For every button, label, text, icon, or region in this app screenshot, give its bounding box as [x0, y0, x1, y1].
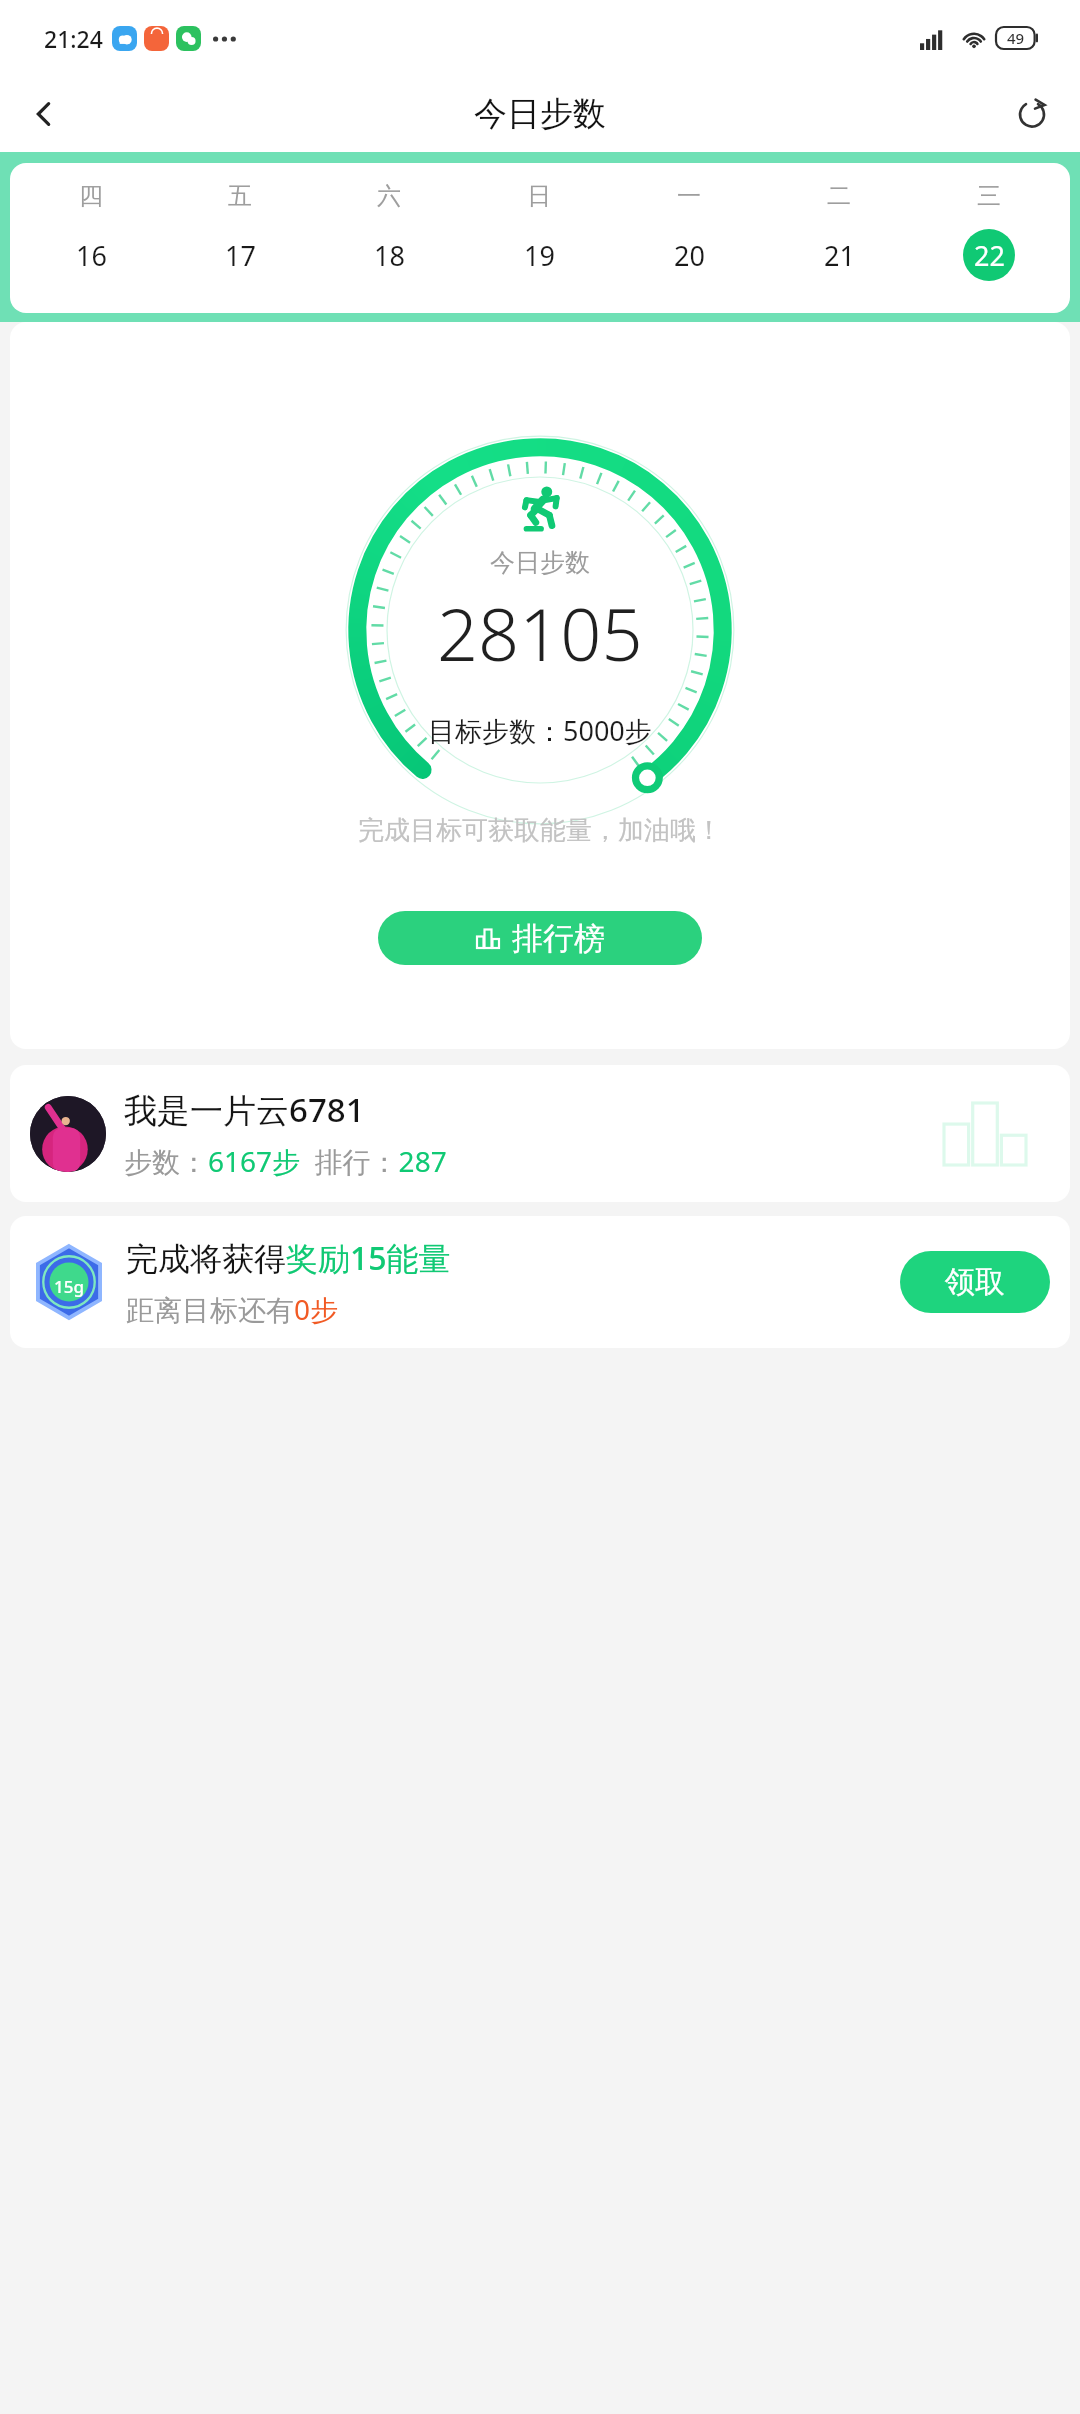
staticText: 五 — [228, 181, 252, 211]
staticText: 19 — [524, 237, 555, 274]
button[interactable]: Back — [16, 86, 72, 142]
staticText: 49 — [1007, 28, 1025, 48]
staticText: 16 — [76, 237, 107, 274]
staticText: 17 — [225, 237, 256, 274]
staticText: 22 — [974, 237, 1005, 274]
button[interactable]: 17 — [214, 229, 266, 281]
staticText: 今日步数 — [474, 93, 606, 135]
button[interactable]: Refresh — [1004, 86, 1060, 142]
staticText: 六 — [377, 181, 401, 211]
staticText: 领取 — [945, 1263, 1005, 1301]
staticText: 15g — [54, 1275, 84, 1298]
staticText: 21 — [824, 237, 855, 274]
staticText: 排行榜 — [512, 919, 605, 958]
staticText: 目标步数：5000步 — [428, 712, 652, 749]
button[interactable]: 16 — [65, 229, 117, 281]
staticText: 完成目标可获取能量，加油哦！ — [358, 814, 722, 847]
staticText: 完成将获得奖励15能量 — [126, 1236, 451, 1280]
button[interactable]: 18 — [363, 229, 415, 281]
staticText: 20 — [674, 237, 705, 274]
button[interactable]: 排行榜 — [378, 911, 702, 965]
staticText: 28105 — [437, 584, 643, 682]
staticText: 日 — [527, 181, 551, 211]
staticText: 三 — [977, 181, 1001, 211]
button[interactable]: 领取 — [900, 1251, 1050, 1313]
staticText: 四 — [79, 181, 103, 211]
staticText: 距离目标还有0步 — [126, 1290, 339, 1328]
staticText: 21:24 — [44, 23, 103, 54]
staticText: 18 — [374, 237, 405, 274]
button[interactable]: 四 — [10, 163, 1070, 313]
staticText: 步数：6167步 排行：287 — [124, 1142, 447, 1180]
staticText: 二 — [827, 181, 851, 211]
staticText: 一 — [677, 181, 701, 211]
staticText: 今日步数 — [490, 547, 590, 578]
button[interactable]: 22 — [963, 229, 1015, 281]
button[interactable]: 19 — [513, 229, 565, 281]
button[interactable]: 我是一片云6781 — [10, 1065, 1070, 1202]
button[interactable]: 21 — [813, 229, 865, 281]
button[interactable]: 20 — [663, 229, 715, 281]
staticText: 我是一片云6781 — [124, 1087, 365, 1132]
